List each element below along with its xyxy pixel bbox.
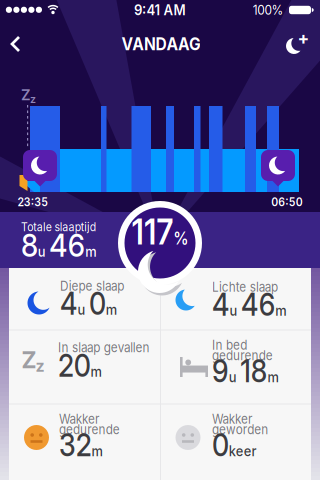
staticText: 100% <box>251 2 285 18</box>
button[interactable]: Back <box>0 27 34 61</box>
staticText: 4u 46m <box>212 286 297 323</box>
staticText: Wakker <box>59 411 105 427</box>
staticText: In bed <box>212 337 252 353</box>
staticText: Z <box>21 86 31 104</box>
staticText: 4u 0m <box>60 285 125 322</box>
staticText: 20m <box>58 347 108 384</box>
staticText: 9:41 AM <box>131 1 189 19</box>
staticText: 32m <box>59 427 109 463</box>
staticText: + <box>297 28 309 48</box>
staticText: geworden <box>212 422 276 437</box>
button[interactable]: Wakker <box>9 404 160 480</box>
staticText: In slaap gevallen <box>58 340 162 355</box>
staticText: Z <box>21 347 36 373</box>
staticText: 8u 46m <box>21 226 107 264</box>
button[interactable]: Add sleep <box>279 28 313 60</box>
staticText: z <box>30 93 36 105</box>
staticText: 9u 18m <box>212 353 288 389</box>
staticText: Totale slaaptijd <box>21 220 106 234</box>
button[interactable]: Lichte slaap <box>160 268 311 330</box>
staticText: 06:50 <box>269 195 305 209</box>
button[interactable]: In bed <box>160 330 311 404</box>
staticText: gedurende <box>59 422 128 437</box>
staticText: Wakker <box>212 411 258 427</box>
staticText: Lichte slaap <box>212 279 287 295</box>
staticText: 23:35 <box>15 195 50 209</box>
staticText: z <box>35 357 44 375</box>
staticText: Diepe slaap <box>60 278 133 294</box>
button[interactable]: Wakker <box>160 404 311 480</box>
button[interactable]: Diepe slaap <box>9 268 160 330</box>
staticText: gedurende <box>212 348 281 363</box>
staticText: 0keer <box>212 427 263 463</box>
staticText: 117% <box>128 212 192 252</box>
staticText: VANDAAG <box>117 34 205 54</box>
button[interactable]: Z <box>9 330 160 404</box>
